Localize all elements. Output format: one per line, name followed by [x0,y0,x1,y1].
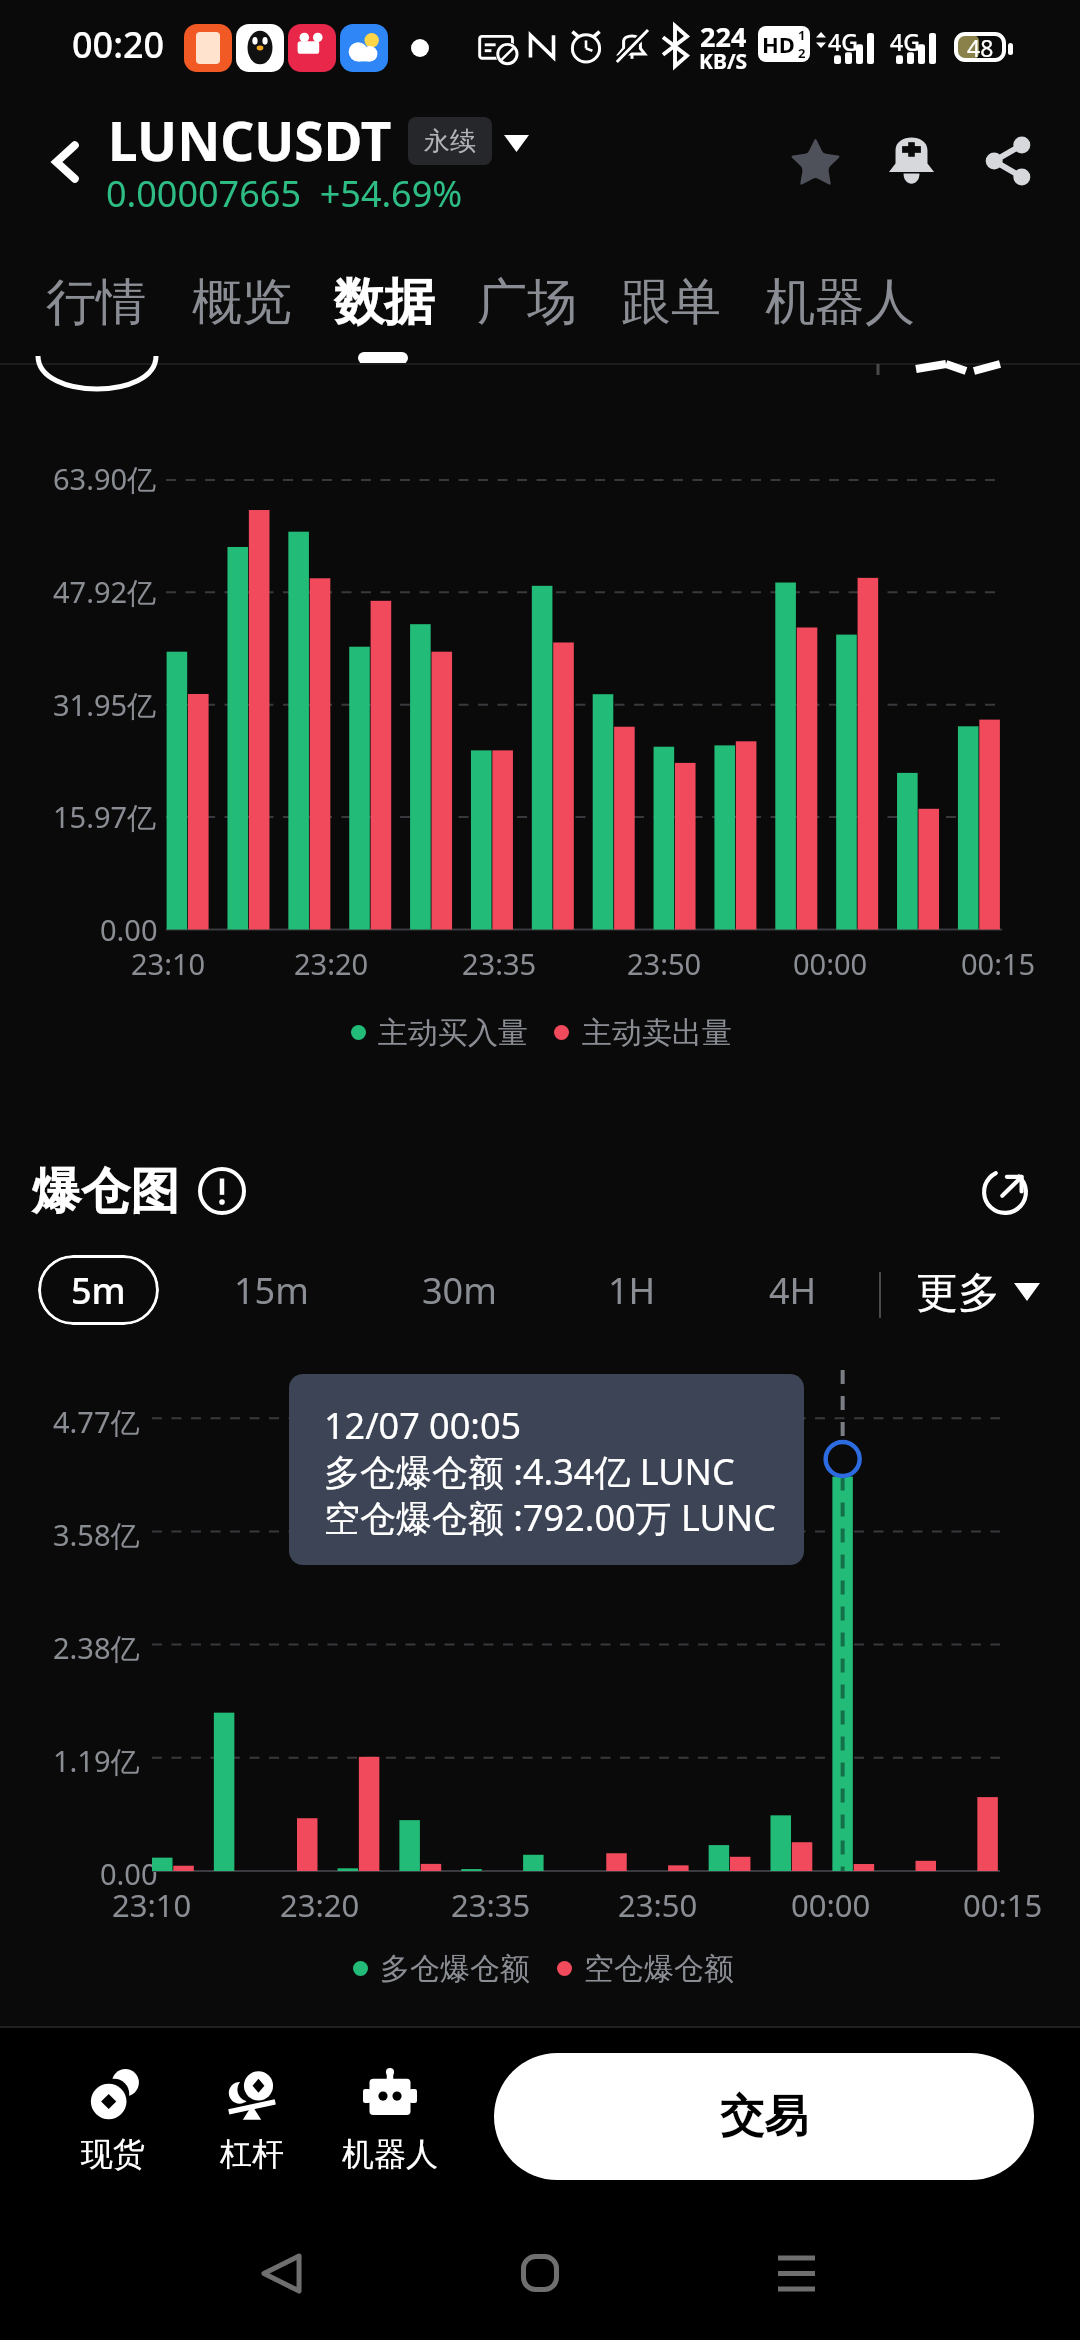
staticText: 更多 [916,1267,1000,1320]
staticText: 空仓爆仓额 :792.00万 LUNC [324,1493,776,1542]
staticText: 永续 [424,125,476,158]
button[interactable]: 更多 [900,1258,1052,1332]
staticText: 1H [608,1266,656,1315]
button[interactable]: 现货 [47,2052,179,2184]
staticText: 主动买入量 [378,1014,528,1052]
staticText: 1 [798,26,806,44]
button[interactable]: Share [966,119,1050,203]
staticText: 30m [422,1266,497,1315]
staticText: 15.97亿 [53,797,157,837]
button[interactable]: Price alert [869,119,953,203]
staticText: 广场 [477,271,577,334]
button[interactable]: 5m [38,1255,159,1325]
staticText: 行情 [46,271,146,334]
button[interactable]: 4H [731,1255,855,1325]
staticText: 224 [700,18,747,55]
staticText: 4G [890,26,920,57]
button[interactable]: 杠杆 [186,2052,318,2184]
staticText: LUNCUSDT [108,104,392,176]
staticText: 23:50 [627,944,702,983]
staticText: 23:35 [462,944,537,983]
staticText: 23:20 [294,944,369,983]
staticText: 空仓爆仓额 [584,1950,734,1988]
button[interactable]: 永续 [408,117,492,165]
staticText: 23:10 [131,944,206,983]
staticText: 4H [769,1266,817,1315]
button[interactable]: 机器人 [324,2052,456,2184]
staticText: 主动卖出量 [582,1014,732,1052]
button[interactable]: Back [26,122,106,202]
staticText: 00:15 [961,944,1036,983]
staticText: 杠杆 [220,2134,284,2174]
staticText: 63.90亿 [53,459,157,499]
staticText: 12/07 00:05 [324,1401,522,1450]
staticText: 概览 [192,271,292,334]
staticText: 2 [798,44,806,62]
button[interactable]: 1H [570,1255,694,1325]
button[interactable]: 广场 [462,252,592,352]
staticText: 23:35 [451,1884,531,1926]
staticText: 3.58亿 [53,1515,140,1555]
button[interactable]: 跟单 [606,252,736,352]
staticText: 23:20 [280,1884,360,1926]
staticText: 5m [71,1266,126,1315]
staticText: 00:00 [791,1884,871,1926]
staticText: 47.92亿 [53,572,157,612]
staticText: 00:00 [793,944,868,983]
button[interactable]: Switch contract [492,117,548,165]
staticText: 多仓爆仓额 [380,1950,530,1988]
button[interactable]: 15m [209,1255,333,1325]
button[interactable]: 行情 [31,252,161,352]
staticText: 多仓爆仓额 :4.34亿 LUNC [324,1447,735,1496]
staticText: 4G [828,26,858,57]
staticText: 23:10 [112,1884,192,1926]
button[interactable]: 数据 [319,252,449,352]
button[interactable]: Info [194,1163,250,1219]
staticText: 1.19亿 [53,1741,140,1781]
button[interactable]: Back [221,2211,341,2331]
staticText: 00:20 [72,20,165,69]
staticText: 爆仓图 [32,1161,179,1223]
staticText: 15m [234,1266,309,1315]
staticText: HD [762,29,795,59]
button[interactable]: 概览 [177,252,307,352]
staticText: 0.00 [100,910,158,949]
button[interactable]: Open chart full screen [974,1161,1036,1223]
button[interactable]: 交易 [494,2053,1034,2180]
button[interactable]: 机器人 [745,252,935,352]
staticText: 0.00007665 +54.69% [106,169,463,218]
staticText: 4.77亿 [53,1402,140,1442]
staticText: 现货 [81,2134,145,2174]
staticText: 2.38亿 [53,1628,140,1668]
staticText: 交易 [720,2089,808,2144]
staticText: 机器人 [765,271,915,334]
button[interactable]: Home [480,2211,600,2331]
staticText: 48 [967,32,994,62]
staticText: 00:15 [963,1884,1043,1926]
staticText: 机器人 [342,2134,438,2174]
staticText: 0.00 [100,1854,158,1893]
button[interactable]: 30m [397,1255,521,1325]
staticText: 31.95亿 [53,685,157,725]
button[interactable]: Favorite [773,119,857,203]
button[interactable]: Recent apps [736,2211,856,2331]
staticText: KB/S [699,47,748,76]
staticText: 跟单 [621,271,721,334]
staticText: 数据 [334,271,434,334]
staticText: 23:50 [618,1884,698,1926]
